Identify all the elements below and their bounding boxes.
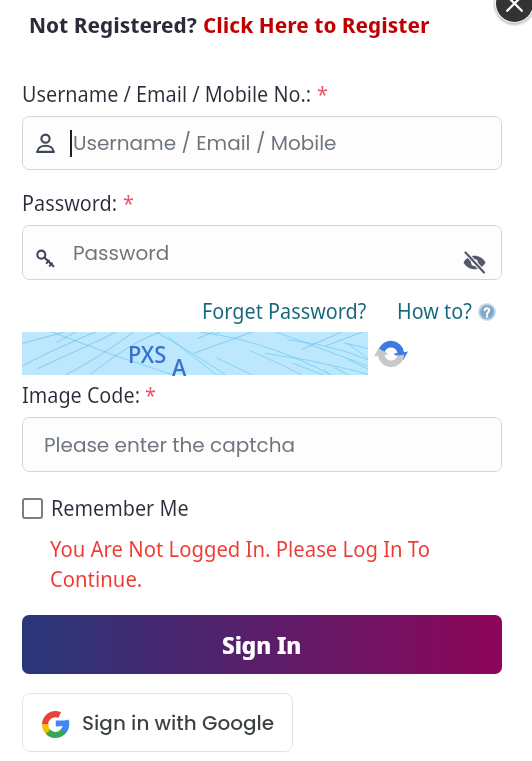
- button[interactable]: Click Here to Register: [203, 9, 430, 39]
- staticText: *: [312, 80, 329, 109]
- button[interactable]: How to?: [397, 297, 496, 326]
- staticText: Click Here to Register: [203, 9, 430, 39]
- button[interactable]: Sign in with Google: [22, 693, 293, 752]
- button[interactable]: Show password: [451, 230, 497, 276]
- staticText: *: [118, 189, 135, 218]
- staticText: Please enter the captcha: [44, 431, 296, 459]
- staticText: How to?: [397, 297, 472, 326]
- staticText: Password:: [22, 189, 118, 218]
- staticText: Image Code:: [22, 381, 140, 410]
- button[interactable]: Sign In: [22, 615, 502, 674]
- staticText: A: [172, 351, 187, 382]
- staticText: Forget Password?: [202, 297, 367, 326]
- staticText: Not Registered?: [29, 9, 203, 39]
- button[interactable]: Remember Me: [22, 494, 189, 523]
- staticText: *: [140, 381, 157, 410]
- staticText: Username / Email / Mobile: [73, 129, 337, 157]
- staticText: Password: [73, 239, 170, 267]
- button[interactable]: Username / Email / Mobile: [22, 116, 502, 170]
- button[interactable]: Please enter the captcha: [22, 417, 502, 472]
- staticText: Sign In: [222, 628, 302, 661]
- button[interactable]: Close: [492, 0, 532, 26]
- button[interactable]: Password: [22, 225, 502, 280]
- button[interactable]: Forget Password?: [202, 297, 367, 326]
- staticText: Remember Me: [51, 494, 189, 523]
- button[interactable]: Refresh captcha: [376, 339, 406, 369]
- staticText: Sign in with Google: [82, 709, 275, 737]
- staticText: PXS: [128, 338, 167, 369]
- staticText: Username / Email / Mobile No.:: [22, 80, 312, 109]
- staticText: You Are Not Logged In. Please Log In To …: [50, 534, 450, 593]
